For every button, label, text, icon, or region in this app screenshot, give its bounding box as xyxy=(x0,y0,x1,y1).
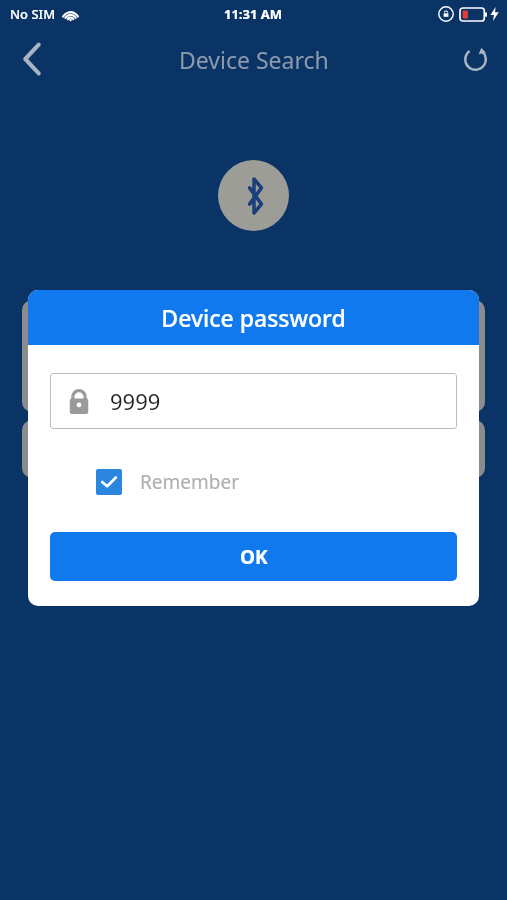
button[interactable]: Refresh xyxy=(449,33,501,85)
button[interactable]: Bluetooth xyxy=(218,160,289,231)
button[interactable] xyxy=(22,300,485,412)
staticText: Device password xyxy=(161,302,346,333)
button[interactable]: Back xyxy=(6,33,58,85)
staticText: 11:31 AM xyxy=(224,5,283,23)
staticText: Device Search xyxy=(179,44,329,75)
staticText: OK xyxy=(240,544,268,570)
staticText: Remember xyxy=(140,469,240,495)
staticText: No SIM xyxy=(10,5,56,23)
button[interactable] xyxy=(22,420,485,478)
button[interactable]: 9999 xyxy=(50,373,457,429)
button[interactable]: OK xyxy=(50,532,457,581)
staticText: 9999 xyxy=(110,386,161,416)
button[interactable]: Remember xyxy=(50,461,240,503)
